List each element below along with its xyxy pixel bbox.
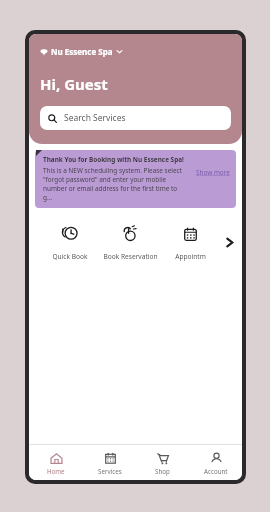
button[interactable]: Quick Book — [39, 220, 100, 264]
button[interactable]: Show more — [196, 168, 230, 177]
button[interactable]: Shop — [136, 445, 189, 480]
staticText: Home — [47, 467, 65, 475]
staticText: Appointm — [175, 252, 206, 261]
staticText: Search Services — [64, 112, 126, 124]
staticText: Book Reservation — [103, 252, 158, 261]
button[interactable]: Nu Essence Spa — [40, 45, 123, 58]
button[interactable]: Appointm — [160, 220, 220, 264]
button[interactable]: Account — [189, 445, 242, 480]
button[interactable]: Thank You for Booking with Nu Essence Sp… — [35, 150, 236, 208]
staticText: Nu Essence Spa — [51, 46, 113, 57]
staticText: Account — [204, 467, 228, 475]
button[interactable]: Home — [29, 445, 83, 480]
button[interactable]: Search Services — [40, 106, 231, 130]
button[interactable]: More services — [220, 233, 238, 251]
staticText: Quick Book — [52, 252, 88, 261]
staticText: Hi, Guest — [40, 74, 108, 94]
button[interactable]: Services — [83, 445, 136, 480]
button[interactable]: Book Reservation — [100, 220, 160, 264]
staticText: Thank You for Booking with Nu Essence Sp… — [43, 155, 184, 164]
staticText: This is a NEW scheduling system. Please … — [43, 166, 184, 202]
staticText: Shop — [155, 467, 170, 475]
staticText: Services — [98, 467, 122, 475]
